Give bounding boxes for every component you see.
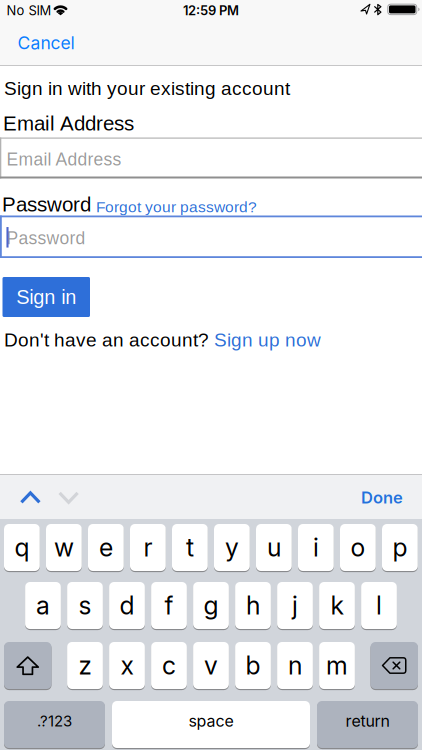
button[interactable]: s: [67, 581, 103, 630]
staticText: d: [119, 590, 134, 621]
button[interactable]: c: [151, 641, 187, 690]
button[interactable]: g: [193, 581, 229, 630]
staticText: space: [188, 711, 233, 731]
button[interactable]: u: [256, 523, 292, 572]
staticText: 12:59 PM: [183, 3, 239, 18]
button[interactable]: Next field: [54, 484, 84, 512]
button[interactable]: Forgot your password?: [96, 198, 257, 215]
button[interactable]: e: [88, 523, 124, 572]
staticText: return: [345, 711, 389, 731]
button[interactable]: q: [4, 523, 40, 572]
staticText: Sign in: [16, 286, 76, 308]
button[interactable]: n: [277, 641, 313, 690]
staticText: o: [350, 532, 365, 563]
button[interactable]: w: [46, 523, 82, 572]
staticText: u: [267, 532, 281, 563]
button[interactable]: Password: [0, 215, 422, 258]
staticText: a: [36, 590, 50, 621]
staticText: Forgot your password?: [96, 198, 257, 215]
button[interactable]: d: [109, 581, 145, 630]
button[interactable]: Delete: [370, 641, 418, 690]
staticText: Cancel: [17, 32, 74, 54]
button[interactable]: z: [67, 641, 103, 690]
staticText: v: [204, 650, 218, 681]
staticText: c: [162, 650, 176, 681]
staticText: y: [225, 532, 239, 563]
button[interactable]: return: [317, 700, 418, 749]
staticText: Sign in with your existing account: [4, 78, 290, 99]
staticText: x: [120, 650, 133, 681]
button[interactable]: k: [319, 581, 355, 630]
staticText: q: [14, 532, 29, 563]
button[interactable]: i: [298, 523, 334, 572]
button[interactable]: r: [130, 523, 166, 572]
staticText: Email Address: [3, 112, 134, 135]
staticText: e: [99, 532, 113, 563]
staticText: Don't have an account?: [4, 329, 209, 351]
staticText: m: [326, 650, 348, 681]
staticText: b: [245, 650, 260, 681]
staticText: .?123: [37, 712, 72, 730]
staticText: g: [203, 590, 218, 621]
staticText: Password: [2, 193, 91, 216]
staticText: i: [313, 532, 319, 563]
button[interactable]: t: [172, 523, 208, 572]
button[interactable]: a: [25, 581, 61, 630]
button[interactable]: o: [340, 523, 376, 572]
staticText: Email Address: [6, 150, 121, 169]
staticText: r: [143, 532, 152, 563]
staticText: p: [392, 532, 407, 563]
staticText: z: [78, 650, 91, 681]
button[interactable]: l: [361, 581, 397, 630]
button[interactable]: f: [151, 581, 187, 630]
staticText: k: [330, 590, 343, 621]
staticText: f: [164, 590, 173, 621]
button[interactable]: h: [235, 581, 271, 630]
staticText: Sign up now: [214, 329, 321, 351]
staticText: s: [78, 590, 91, 621]
staticText: n: [288, 650, 302, 681]
button[interactable]: space: [112, 700, 310, 749]
button[interactable]: Sign up now: [214, 329, 321, 351]
button[interactable]: Email Address: [0, 137, 422, 178]
staticText: h: [246, 590, 260, 621]
staticText: w: [54, 532, 74, 563]
button[interactable]: y: [214, 523, 250, 572]
button[interactable]: p: [382, 523, 418, 572]
staticText: t: [186, 532, 194, 563]
staticText: Done: [361, 487, 403, 507]
staticText: j: [292, 590, 298, 621]
staticText: l: [376, 590, 382, 621]
button[interactable]: Sign in: [2, 277, 90, 317]
button[interactable]: j: [277, 581, 313, 630]
button[interactable]: .?123: [4, 700, 105, 749]
button[interactable]: x: [109, 641, 145, 690]
button[interactable]: v: [193, 641, 229, 690]
button[interactable]: b: [235, 641, 271, 690]
button[interactable]: m: [319, 641, 355, 690]
button[interactable]: Shift: [4, 641, 51, 690]
staticText: Password: [6, 228, 85, 248]
button[interactable]: Cancel: [10, 28, 82, 58]
button[interactable]: Done: [344, 481, 420, 513]
button[interactable]: Previous field: [15, 484, 45, 512]
staticText: No SIM: [6, 3, 51, 18]
